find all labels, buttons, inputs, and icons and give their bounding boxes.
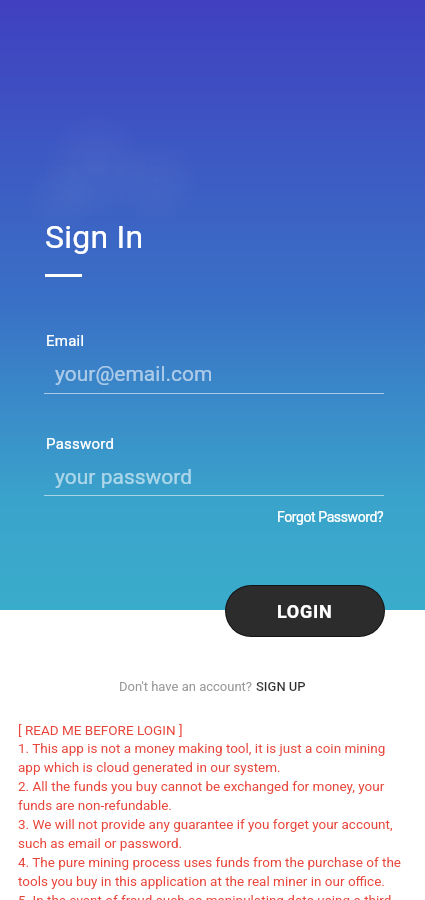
staticText: Password	[46, 435, 115, 453]
staticText: Email	[46, 332, 85, 350]
staticText: LOGIN	[277, 601, 333, 622]
staticText: Don't have an account?	[119, 679, 256, 694]
button[interactable]: SIGN UP	[256, 679, 306, 694]
staticText: your@email.com	[55, 362, 213, 387]
staticText: your password	[55, 465, 193, 490]
staticText: [ READ ME BEFORE LOGIN ] 1. This app is …	[18, 722, 407, 900]
button[interactable]: Forgot Password?	[277, 509, 425, 525]
button[interactable]: LOGIN	[226, 586, 384, 636]
staticText: Sign In	[45, 218, 144, 256]
